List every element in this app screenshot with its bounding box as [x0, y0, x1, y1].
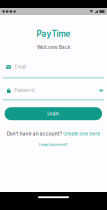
staticText: Welcome Back [37, 44, 70, 50]
staticText: PayTime [36, 29, 70, 39]
staticText: Login [47, 111, 59, 116]
button[interactable]: Show password [99, 89, 103, 92]
staticText: Email [15, 64, 26, 70]
staticText: Password [14, 88, 34, 93]
button[interactable]: Create one here [63, 131, 100, 137]
button[interactable]: Login [5, 107, 102, 120]
staticText: Create one here [63, 131, 100, 137]
staticText: Forgot password? [39, 142, 68, 147]
button[interactable]: Forgot password? [0, 142, 107, 147]
staticText: Don't have an account? [7, 131, 62, 137]
